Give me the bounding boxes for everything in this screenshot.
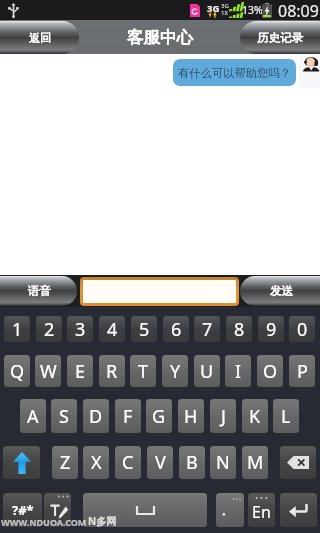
other: Enter [280,493,317,527]
staticText: R [106,359,118,384]
staticText: N [216,450,230,475]
staticText: 1X [221,9,228,17]
button[interactable]: Y [162,355,188,387]
staticText: 3G [221,2,229,10]
staticText: 3 [75,317,86,342]
button[interactable]: F [115,399,141,433]
button[interactable]: 5 [131,316,157,342]
other: Shift [3,446,40,479]
staticText: 6 [171,317,182,342]
staticText: P [297,359,308,384]
button[interactable]: P [289,355,315,387]
button[interactable]: N [210,446,236,479]
button[interactable]: O [257,355,283,387]
button[interactable]: 有什么可以帮助您吗？ [173,59,296,86]
button[interactable]: Q [4,355,30,387]
button[interactable]: H [178,399,204,433]
staticText: D [89,404,103,429]
staticText: 9 [266,317,277,342]
button[interactable]: 3 [67,316,93,342]
staticText: C [122,450,134,475]
staticText: J [221,404,226,429]
button[interactable]: U [194,355,220,387]
staticText: 历史记录 [257,31,303,45]
staticText: M [247,450,264,475]
staticText: V [155,450,166,475]
button[interactable]: Period [216,493,244,527]
button[interactable]: Input method [44,493,71,527]
staticText: 8 [234,317,245,342]
staticText: O [263,359,278,384]
button[interactable]: 6 [163,316,189,342]
button[interactable]: 发送 [240,276,320,306]
staticText: 5 [139,317,150,342]
button[interactable]: I [225,355,251,387]
button[interactable]: M [242,446,268,479]
staticText: Q [10,359,25,384]
button[interactable]: A [20,399,46,433]
button[interactable]: 2 [36,316,62,342]
staticText: 客服中心 [127,27,193,48]
button[interactable]: J [210,399,236,433]
staticText: 0 [297,317,308,342]
staticText: 1 [12,317,23,342]
button[interactable]: 8 [226,316,252,342]
button[interactable]: 语音 [0,276,77,306]
staticText: 13% [242,3,263,17]
staticText: B [186,450,198,475]
button[interactable]: 9 [258,316,284,342]
button[interactable]: 0 [289,316,315,342]
staticText: U [200,359,214,384]
button[interactable]: L [273,399,299,433]
button[interactable]: B [179,446,205,479]
staticText: 2 [44,317,55,342]
staticText: X [91,450,102,475]
staticText: H [184,404,198,429]
button[interactable]: Enter [280,493,317,527]
staticText: 7 [202,317,213,342]
button[interactable]: D [83,399,109,433]
button[interactable]: ?#* [3,493,42,527]
button[interactable]: 返回 [0,21,79,54]
staticText: E [75,359,86,384]
button[interactable]: 4 [99,316,125,342]
staticText: Y [170,359,181,384]
staticText: N多网 [88,514,117,528]
button[interactable]: C [115,446,141,479]
button[interactable]: W [35,355,61,387]
staticText: K [249,404,261,429]
staticText: 返回 [29,31,51,45]
button[interactable]: V [147,446,173,479]
button[interactable]: E [67,355,93,387]
button[interactable]: Z [52,446,78,479]
staticText: Z [60,450,71,475]
button[interactable]: Shift [3,446,40,479]
staticText: A [27,404,39,429]
button[interactable]: 7 [194,316,220,342]
other: Backspace [280,446,316,479]
staticText: En [252,501,271,523]
staticText: 08:09 [278,0,319,20]
staticText: T [138,359,149,384]
button[interactable]: Space [83,493,207,527]
staticText: L [281,404,291,429]
button[interactable]: K [242,399,268,433]
staticText: 有什么可以帮助您吗？ [178,66,291,80]
button[interactable]: 1 [4,316,30,342]
button[interactable]: Backspace [280,446,316,479]
button[interactable]: X [83,446,109,479]
button[interactable]: En [248,493,275,527]
button[interactable]: G [146,399,172,433]
button[interactable]: 历史记录 [240,21,320,54]
other: Input method [44,493,71,527]
staticText: 4 [107,317,118,342]
staticText: ?#* [12,501,34,519]
button[interactable]: R [99,355,125,387]
staticText: 3G [207,2,220,15]
staticText: W [40,359,57,384]
button[interactable]: S [51,399,77,433]
staticText: WWW.NDUOA.COM [1,516,87,528]
button[interactable]: T [130,355,156,387]
staticText: S [59,404,69,429]
